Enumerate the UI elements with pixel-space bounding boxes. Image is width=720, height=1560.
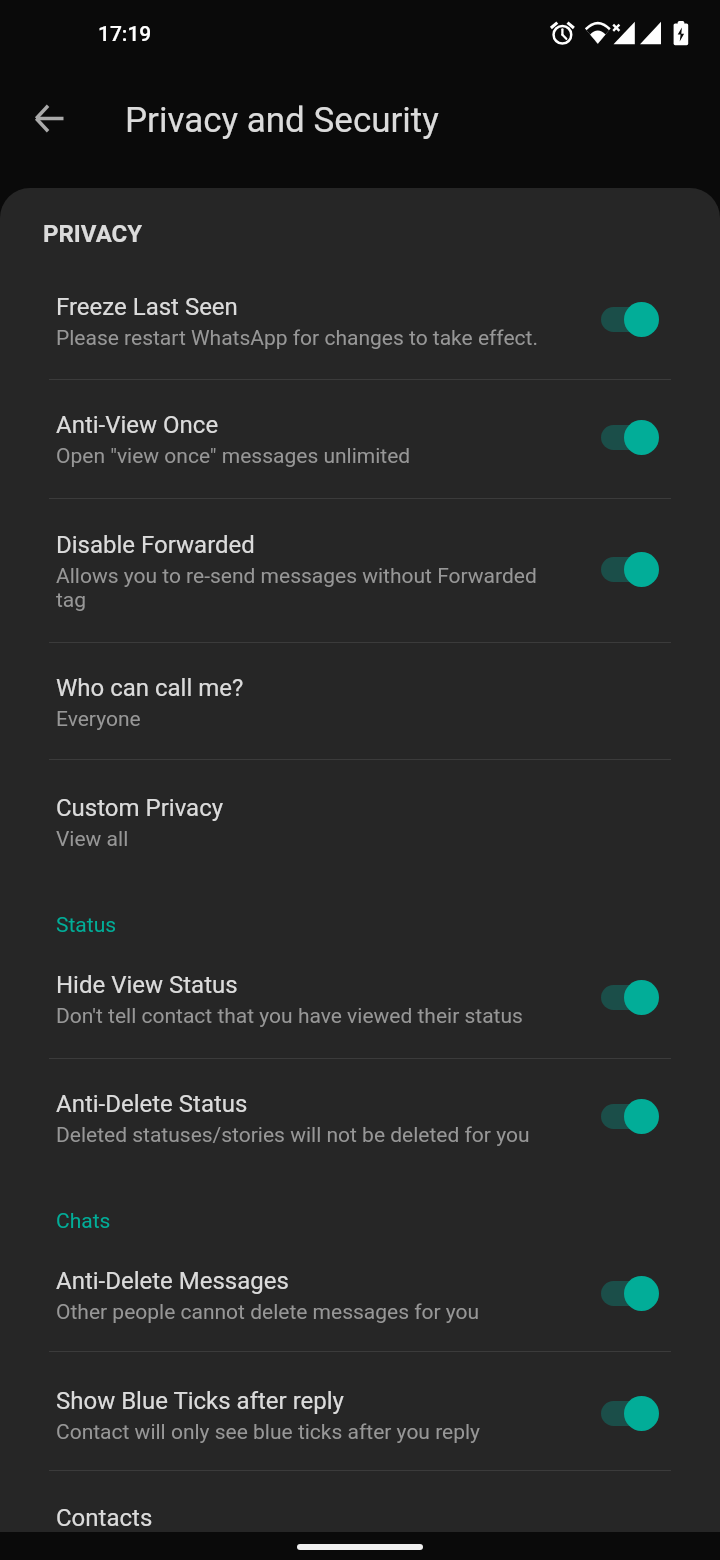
staticText: Contact will only see blue ticks after y…: [56, 1420, 481, 1445]
staticText: Contacts: [56, 1504, 153, 1532]
staticText: Custom Privacy: [56, 794, 224, 822]
staticText: Who can call me?: [56, 674, 244, 702]
staticText: Open "view once" messages unlimited: [56, 444, 411, 469]
button[interactable]: Contacts: [0, 1471, 720, 1532]
staticText: Freeze Last Seen: [56, 293, 238, 321]
button[interactable]: Toggle Freeze Last Seen: [601, 301, 659, 337]
staticText: Hide View Status: [56, 971, 238, 999]
staticText: Status: [56, 913, 117, 938]
staticText: Anti-Delete Messages: [56, 1267, 289, 1295]
button[interactable]: Disable Forwarded: [0, 499, 720, 642]
staticText: PRIVACY: [43, 220, 143, 248]
button[interactable]: Toggle Anti-Delete Messages: [601, 1275, 659, 1311]
button[interactable]: Back: [21, 90, 77, 146]
button[interactable]: Toggle Hide View Status: [601, 979, 659, 1015]
button[interactable]: Toggle Show Blue Ticks after reply: [601, 1395, 659, 1431]
staticText: Anti-View Once: [56, 411, 219, 439]
staticText: View all: [56, 827, 129, 852]
staticText: Don't tell contact that you have viewed …: [56, 1004, 523, 1029]
staticText: Other people cannot delete messages for …: [56, 1300, 480, 1325]
staticText: Privacy and Security: [125, 100, 439, 141]
staticText: Please restart WhatsApp for changes to t…: [56, 326, 538, 351]
button[interactable]: Toggle Disable Forwarded: [601, 551, 659, 587]
button[interactable]: Toggle Anti-View Once: [601, 419, 659, 455]
button[interactable]: Anti-Delete Messages: [0, 1234, 720, 1351]
button[interactable]: Custom Privacy: [0, 760, 720, 852]
staticText: 17:19: [98, 22, 152, 47]
button[interactable]: Show Blue Ticks after reply: [0, 1352, 720, 1470]
staticText: Show Blue Ticks after reply: [56, 1387, 344, 1415]
staticText: Anti-Delete Status: [56, 1090, 248, 1118]
staticText: Chats: [56, 1209, 111, 1234]
staticText: Allows you to re-send messages without F…: [56, 564, 556, 612]
button[interactable]: Freeze Last Seen: [0, 248, 720, 379]
button[interactable]: Who can call me?: [0, 643, 720, 759]
staticText: Disable Forwarded: [56, 531, 255, 559]
button[interactable]: Hide View Status: [0, 938, 720, 1058]
staticText: Deleted statuses/stories will not be del…: [56, 1123, 530, 1148]
button[interactable]: Anti-Delete Status: [0, 1059, 720, 1148]
button[interactable]: Anti-View Once: [0, 380, 720, 498]
button[interactable]: Toggle Anti-Delete Status: [601, 1098, 659, 1134]
staticText: Everyone: [56, 707, 141, 732]
